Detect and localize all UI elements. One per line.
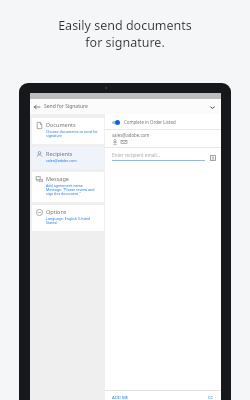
staticText: Easily send documents bbox=[58, 17, 192, 34]
staticText: CC bbox=[208, 395, 214, 400]
staticText: Options bbox=[46, 208, 67, 215]
button[interactable]: Contacts bbox=[210, 155, 216, 161]
button[interactable]: CC bbox=[207, 394, 215, 400]
staticText: Send for Signature bbox=[44, 103, 88, 110]
button[interactable]: Signer role bbox=[112, 139, 118, 145]
staticText: for signature. bbox=[85, 34, 165, 51]
staticText: Documents bbox=[46, 121, 76, 128]
button[interactable]: Email delivery bbox=[121, 139, 127, 145]
button[interactable]: Message bbox=[32, 172, 104, 202]
staticText: sales@adobe.com bbox=[46, 158, 77, 163]
staticText: Complete in Order Listed bbox=[124, 119, 176, 125]
button[interactable]: Documents bbox=[32, 118, 104, 144]
button[interactable]: More options bbox=[208, 103, 216, 111]
staticText: ADD ME bbox=[112, 395, 129, 400]
button[interactable]: Back bbox=[33, 103, 41, 111]
staticText: sales@adobe.com bbox=[112, 132, 150, 138]
button[interactable]: Complete in Order Listed bbox=[112, 119, 221, 125]
staticText: Add agreement name Message: "Please revi… bbox=[46, 183, 95, 196]
button[interactable]: ADD ME bbox=[111, 394, 130, 400]
staticText: Language: English (United States) bbox=[46, 216, 91, 225]
staticText: Choose documents to send for signature bbox=[46, 129, 98, 138]
staticText: Message bbox=[46, 175, 69, 182]
staticText: Enter recipient email... bbox=[112, 152, 161, 158]
staticText: Recipients bbox=[46, 150, 73, 157]
button[interactable]: Options bbox=[32, 205, 104, 231]
button[interactable]: Recipients bbox=[32, 147, 104, 169]
